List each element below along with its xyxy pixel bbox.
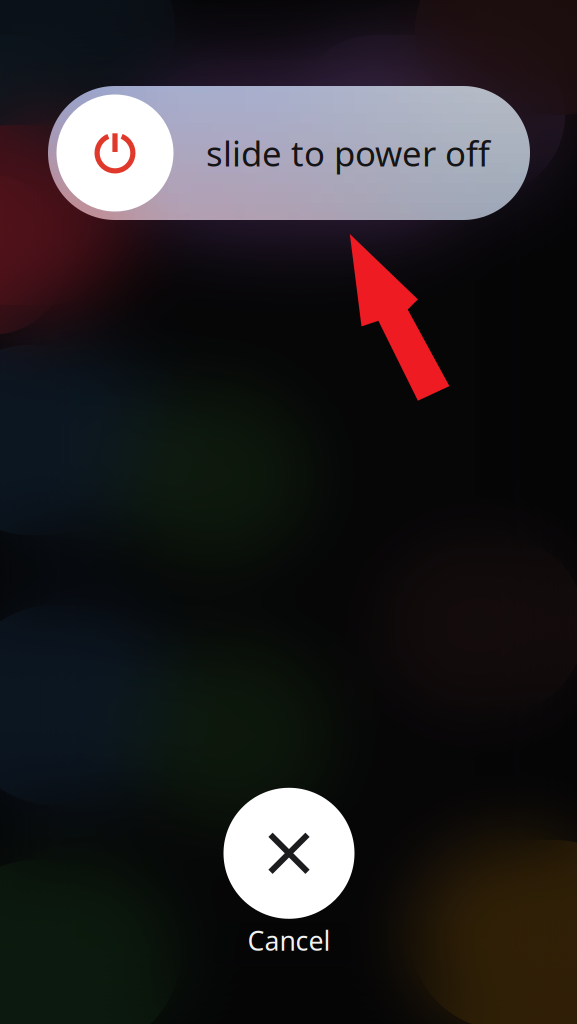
button[interactable]: Cancel (223, 788, 354, 958)
staticText: slide to power off (206, 130, 490, 176)
button[interactable]: slide to power off (48, 86, 530, 220)
staticText: Cancel (247, 923, 330, 958)
